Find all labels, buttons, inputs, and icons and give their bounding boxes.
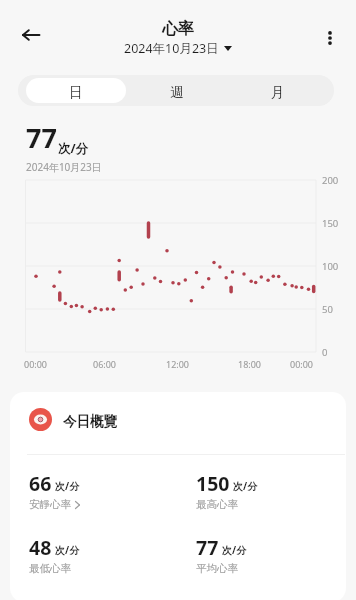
staticText: 48 bbox=[29, 534, 52, 561]
button[interactable]: 月 bbox=[227, 78, 328, 103]
staticText: 2024年10月23日 bbox=[26, 160, 102, 174]
button[interactable]: 日 bbox=[26, 78, 126, 103]
staticText: 18:00 bbox=[238, 358, 262, 370]
staticText: 日 bbox=[69, 84, 83, 101]
staticText: 次/分 bbox=[55, 543, 80, 557]
staticText: 77 bbox=[26, 119, 57, 156]
button[interactable]: 77 bbox=[196, 534, 346, 575]
button[interactable]: 48 bbox=[29, 534, 179, 575]
button[interactable]: More options bbox=[312, 20, 348, 56]
staticText: 50 bbox=[322, 303, 333, 316]
button[interactable]: 150 bbox=[196, 470, 346, 511]
button[interactable]: Back bbox=[10, 14, 51, 55]
staticText: 心率 bbox=[162, 19, 194, 39]
staticText: 安靜心率 bbox=[29, 498, 71, 511]
staticText: 週 bbox=[170, 84, 184, 101]
staticText: 150 bbox=[196, 470, 230, 497]
staticText: 06:00 bbox=[93, 358, 117, 370]
staticText: 次/分 bbox=[55, 479, 80, 493]
staticText: 0 bbox=[322, 346, 328, 359]
staticText: 12:00 bbox=[166, 358, 190, 370]
staticText: 最低心率 bbox=[29, 562, 71, 575]
staticText: 次/分 bbox=[233, 479, 258, 493]
button[interactable]: 2024年10月23日 bbox=[122, 40, 234, 57]
staticText: 2024年10月23日 bbox=[124, 40, 219, 57]
staticText: 100 bbox=[322, 260, 339, 273]
staticText: 200 bbox=[322, 174, 339, 187]
staticText: 00:00 bbox=[24, 358, 48, 370]
button[interactable]: 66 bbox=[29, 470, 179, 511]
button[interactable]: 週 bbox=[126, 78, 227, 103]
staticText: 次/分 bbox=[58, 140, 89, 157]
staticText: 66 bbox=[29, 470, 52, 497]
staticText: 150 bbox=[322, 217, 339, 230]
staticText: 00:00 bbox=[290, 358, 314, 370]
staticText: 最高心率 bbox=[196, 498, 238, 511]
staticText: 77 bbox=[196, 534, 219, 561]
staticText: 平均心率 bbox=[196, 562, 238, 575]
staticText: 月 bbox=[271, 84, 285, 101]
staticText: 次/分 bbox=[222, 543, 247, 557]
staticText: 今日概覽 bbox=[63, 413, 117, 430]
